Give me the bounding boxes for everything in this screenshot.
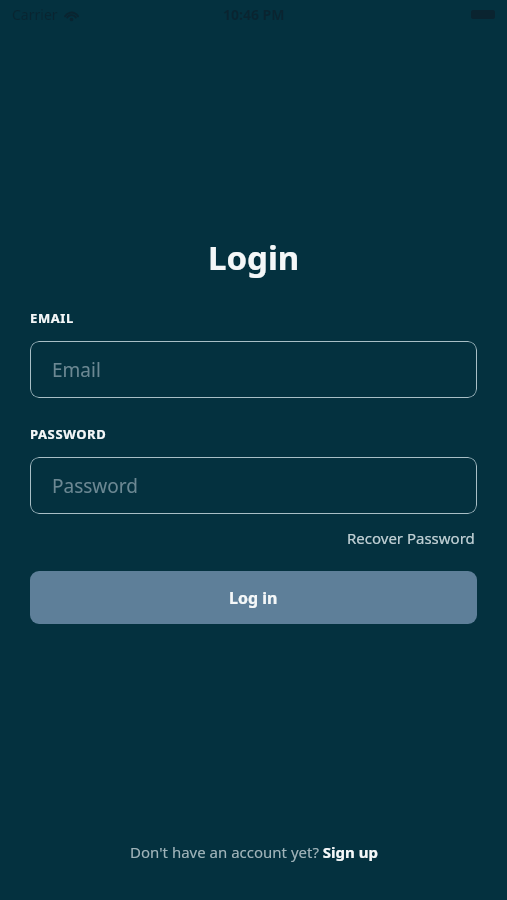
staticText: EMAIL (30, 309, 74, 327)
staticText: Recover Password (347, 528, 475, 548)
button[interactable]: Recover Password (345, 527, 477, 549)
button[interactable]: Password (30, 457, 477, 514)
button[interactable]: Don't have an account yet? Sign up (126, 840, 382, 864)
staticText: Password (52, 473, 138, 499)
staticText: PASSWORD (30, 425, 107, 443)
staticText: Email (52, 357, 101, 383)
staticText: Carrier (12, 5, 58, 24)
staticText: Log in (229, 587, 278, 609)
button[interactable]: Email (30, 341, 477, 398)
staticText: 10:46 PM (223, 5, 285, 24)
staticText: Login (208, 235, 300, 280)
button[interactable]: Log in (30, 571, 477, 624)
staticText: Don't have an account yet? Sign up (130, 842, 378, 862)
